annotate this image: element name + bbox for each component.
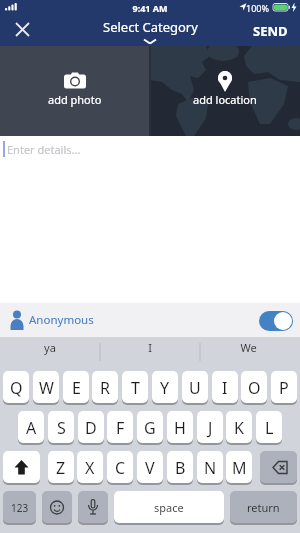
button[interactable]: G (137, 411, 163, 444)
staticText: P (279, 377, 289, 399)
staticText: 123 (11, 501, 29, 515)
staticText: Select Category (103, 18, 198, 36)
button[interactable]: V (137, 451, 163, 484)
button[interactable]: Q (3, 371, 29, 404)
button[interactable]: add photo (0, 46, 150, 136)
button[interactable]: R (92, 371, 118, 404)
button[interactable]: add location (150, 46, 300, 136)
staticText: add location (193, 92, 257, 107)
button[interactable]: Y (152, 371, 178, 404)
button[interactable]: C (107, 451, 133, 484)
staticText: H (174, 417, 186, 439)
button[interactable]: O (241, 371, 267, 404)
staticText: B (175, 457, 186, 479)
staticText: space (154, 500, 184, 515)
staticText: W (39, 377, 54, 399)
button[interactable]: E (63, 371, 89, 404)
button[interactable]: N (197, 451, 223, 484)
button[interactable]: U (182, 371, 208, 404)
staticText: F (116, 417, 125, 439)
staticText: K (234, 417, 244, 439)
button[interactable]: I (212, 371, 238, 404)
button[interactable]: Z (48, 451, 74, 484)
button[interactable]: K (226, 411, 252, 444)
button[interactable] (260, 451, 297, 484)
button[interactable]: S (48, 411, 74, 444)
button[interactable]: F (107, 411, 133, 444)
button[interactable]: B (167, 451, 193, 484)
staticText: S (57, 417, 66, 439)
staticText: T (131, 377, 140, 399)
button[interactable]: W (33, 371, 59, 404)
button[interactable] (259, 311, 293, 331)
staticText: E (72, 377, 81, 399)
button[interactable]: return (230, 491, 297, 524)
button[interactable] (3, 451, 40, 484)
staticText: M (232, 457, 247, 479)
staticText: I (222, 377, 228, 399)
staticText: Z (56, 457, 66, 479)
staticText: 100% (246, 2, 269, 14)
staticText: ya (44, 340, 56, 355)
button[interactable]: A (18, 411, 44, 444)
staticText: A (26, 417, 37, 439)
button[interactable]: H (167, 411, 193, 444)
button[interactable]: space (114, 491, 224, 524)
button[interactable]: T (122, 371, 148, 404)
staticText: C (115, 457, 126, 479)
button[interactable]: 123 (3, 491, 36, 524)
staticText: X (85, 457, 95, 479)
button[interactable]: Select Category (90, 18, 210, 46)
staticText: J (208, 417, 213, 439)
staticText: N (204, 457, 217, 479)
button[interactable] (8, 15, 36, 43)
button[interactable] (78, 491, 108, 524)
staticText: G (144, 417, 156, 439)
staticText: U (189, 377, 201, 399)
staticText: SEND (253, 22, 288, 40)
staticText: return (247, 500, 280, 515)
staticText: Y (160, 377, 170, 399)
staticText: V (145, 457, 155, 479)
staticText: Enter details... (7, 142, 81, 157)
button[interactable]: D (78, 411, 104, 444)
button[interactable] (42, 491, 72, 524)
staticText: D (85, 417, 97, 439)
button[interactable]: L (256, 411, 282, 444)
staticText: O (248, 377, 261, 399)
staticText: I (148, 340, 152, 355)
button[interactable]: M (226, 451, 252, 484)
staticText: L (265, 417, 274, 439)
staticText: R (100, 377, 110, 399)
staticText: add photo (48, 92, 102, 107)
button[interactable]: J (197, 411, 223, 444)
staticText: 9:41 AM (132, 2, 168, 14)
button[interactable]: X (77, 451, 103, 484)
staticText: Anonymous (29, 312, 94, 328)
staticText: Q (10, 377, 23, 399)
button[interactable]: SEND (245, 18, 295, 44)
staticText: We (240, 340, 257, 355)
button[interactable]: P (271, 371, 297, 404)
